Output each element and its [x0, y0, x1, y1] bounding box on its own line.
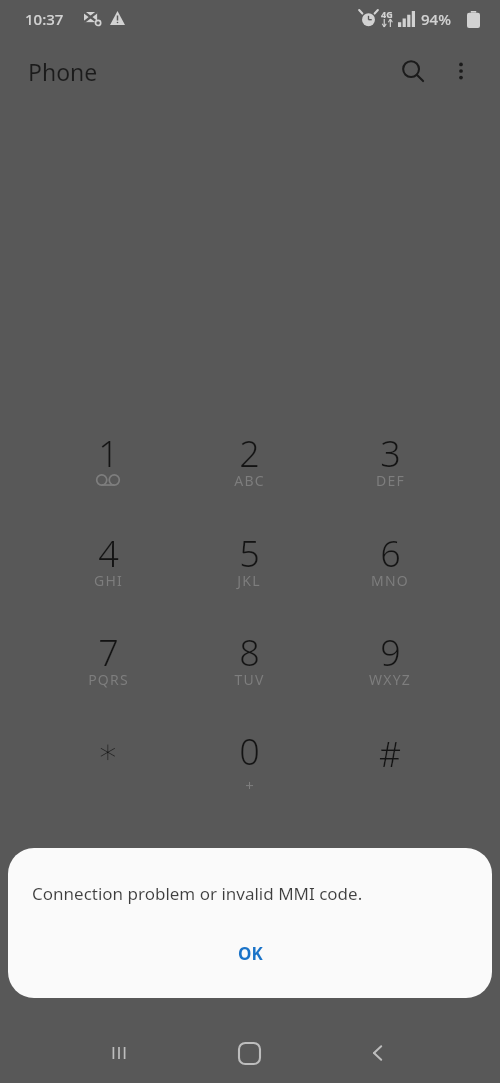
button[interactable]: 7: [46, 618, 170, 710]
button[interactable]: 4: [46, 519, 170, 611]
button[interactable]: 1: [46, 419, 170, 511]
staticText: 1: [98, 429, 119, 478]
button[interactable]: OK: [185, 930, 315, 976]
staticText: DEF: [376, 471, 405, 490]
staticText: 3: [380, 429, 401, 478]
staticText: Connection problem or invalid MMI code.: [32, 882, 363, 905]
staticText: 9: [380, 628, 401, 677]
staticText: 0: [239, 727, 260, 776]
staticText: 7: [98, 628, 119, 677]
staticText: 4G: [381, 8, 393, 20]
staticText: ∗: [97, 731, 119, 771]
staticText: 5: [239, 529, 260, 578]
staticText: 10:37: [25, 9, 64, 29]
staticText: ABC: [234, 471, 265, 490]
staticText: +: [245, 775, 254, 795]
button[interactable]: Back: [348, 1030, 408, 1076]
button[interactable]: Recents: [89, 1030, 149, 1076]
staticText: #: [379, 731, 401, 777]
staticText: GHI: [94, 571, 123, 590]
staticText: JKL: [237, 571, 261, 590]
staticText: WXYZ: [369, 670, 411, 689]
button[interactable]: 3: [328, 419, 452, 511]
staticText: MNO: [371, 571, 409, 590]
staticText: OK: [238, 942, 263, 965]
button[interactable]: 8: [187, 618, 311, 710]
button[interactable]: 9: [328, 618, 452, 710]
button[interactable]: 5: [187, 519, 311, 611]
button[interactable]: Home: [219, 1030, 279, 1076]
button[interactable]: More options: [439, 49, 483, 93]
staticText: PQRS: [88, 670, 129, 689]
button[interactable]: 0: [187, 717, 311, 809]
staticText: 94%: [421, 9, 451, 29]
staticText: 6: [380, 529, 401, 578]
staticText: Phone: [28, 56, 98, 87]
button[interactable]: Search: [391, 49, 435, 93]
staticText: 4: [98, 529, 119, 578]
button[interactable]: 6: [328, 519, 452, 611]
staticText: 8: [239, 628, 260, 677]
staticText: TUV: [234, 670, 265, 689]
button[interactable]: 2: [187, 419, 311, 511]
staticText: 2: [239, 429, 260, 478]
button[interactable]: #: [328, 717, 452, 809]
